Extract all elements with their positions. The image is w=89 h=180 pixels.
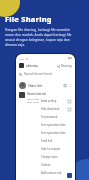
button[interactable]: Menu	[19, 63, 24, 68]
button[interactable]: Set password	[39, 113, 73, 121]
staticText: Share link	[28, 84, 43, 88]
staticText: Set registration date	[41, 131, 66, 135]
button[interactable]: Share link	[19, 82, 72, 89]
staticText: Dengan file sharing, berbagi file semaki…	[5, 27, 77, 47]
button[interactable]: Undoes	[39, 161, 73, 169]
staticText: Setid link	[41, 139, 53, 143]
button[interactable]: Menu	[19, 63, 72, 68]
staticText: File Sharing	[5, 14, 52, 24]
staticText: aktiv untuk	[27, 100, 40, 103]
other: Copy	[64, 84, 67, 87]
staticText: Sharing	[61, 64, 72, 68]
staticText: Hide download	[41, 107, 60, 111]
button[interactable]: Change notes	[39, 153, 73, 161]
other: Share	[57, 65, 60, 68]
staticText: Change notes	[41, 155, 58, 159]
staticText: 7:45	[19, 57, 24, 60]
button[interactable]: Salin ke snippet	[39, 145, 73, 153]
staticText: Salin ke snippet	[41, 147, 61, 151]
staticText: Set registration date	[41, 123, 66, 127]
button[interactable]: Setid link	[39, 137, 73, 145]
button[interactable]: Hide download	[39, 105, 73, 113]
button[interactable]: Add location risk	[39, 169, 73, 177]
staticText: Set password	[41, 115, 58, 119]
staticText: Undoes	[41, 163, 51, 167]
staticText: aktivitas	[26, 64, 39, 68]
button[interactable]: Add	[67, 173, 72, 178]
staticText: Share internal	[27, 92, 46, 96]
button[interactable]: Set registration date	[39, 129, 73, 137]
button[interactable]: Share internal	[19, 92, 72, 103]
staticText: Add location risk	[41, 171, 62, 175]
other: More options	[69, 84, 72, 87]
other: Search	[19, 73, 22, 76]
staticText: Nama/telemetri/email	[24, 72, 52, 76]
button[interactable]: Anda setting	[39, 97, 73, 105]
button[interactable]: Set registration date	[39, 121, 73, 129]
staticText: nama anggota	[27, 97, 44, 100]
staticText: ▮▮▮	[68, 57, 72, 60]
button[interactable]: Search	[19, 72, 72, 76]
staticText: Anda setting	[41, 99, 57, 103]
